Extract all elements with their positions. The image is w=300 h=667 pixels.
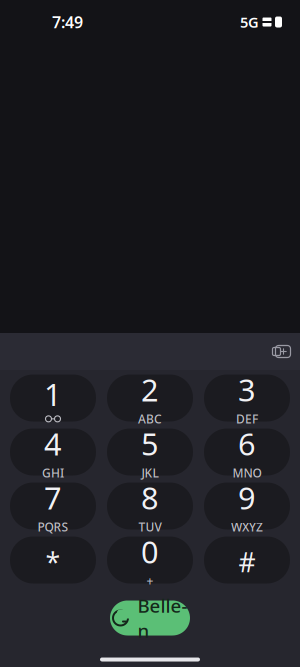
- staticText: 2: [141, 369, 159, 410]
- staticText: *: [45, 544, 60, 580]
- button[interactable]: 5: [107, 428, 193, 475]
- button[interactable]: 1: [10, 374, 96, 421]
- staticText: 1: [44, 374, 62, 414]
- staticText: MNO: [232, 465, 261, 481]
- staticText: TUV: [138, 519, 161, 535]
- staticText: +: [146, 573, 153, 589]
- staticText: 3: [238, 369, 256, 410]
- staticText: 5: [141, 423, 159, 464]
- button[interactable]: 3: [204, 374, 290, 421]
- staticText: JKL: [141, 465, 158, 481]
- button[interactable]: 4: [10, 428, 96, 475]
- staticText: 9: [238, 477, 256, 518]
- staticText: DEF: [236, 411, 258, 427]
- button[interactable]: 6: [204, 428, 290, 475]
- button[interactable]: Backspace: [262, 333, 300, 369]
- button[interactable]: Bellen: [110, 600, 190, 635]
- button[interactable]: 7: [10, 482, 96, 529]
- staticText: WXYZ: [231, 519, 263, 535]
- button[interactable]: 0: [107, 536, 193, 583]
- staticText: 7: [44, 477, 62, 518]
- button[interactable]: 9: [204, 482, 290, 529]
- button[interactable]: *: [10, 536, 96, 583]
- button[interactable]: #: [204, 536, 290, 583]
- staticText: 0: [141, 531, 159, 572]
- staticText: #: [238, 544, 255, 580]
- staticText: GHI: [42, 465, 64, 481]
- staticText: 5G: [240, 12, 259, 32]
- staticText: 8: [141, 477, 159, 518]
- button[interactable]: 2: [107, 374, 193, 421]
- staticText: 4: [44, 423, 62, 464]
- staticText: 6: [238, 423, 256, 464]
- button[interactable]: 8: [107, 482, 193, 529]
- staticText: 7:49: [52, 11, 83, 33]
- staticText: Bellen: [137, 593, 187, 643]
- staticText: ABC: [138, 411, 162, 427]
- staticText: PQRS: [37, 519, 68, 535]
